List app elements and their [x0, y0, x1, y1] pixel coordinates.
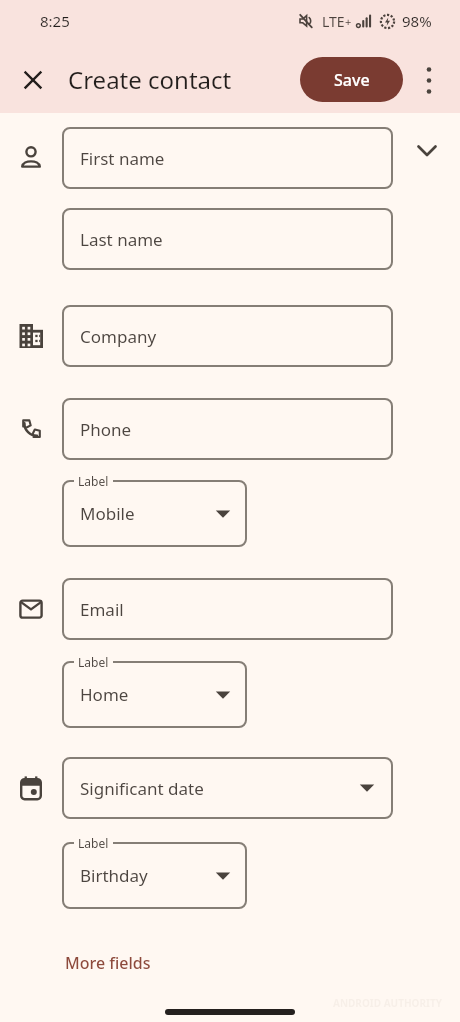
staticText: More fields [65, 952, 151, 974]
staticText: Birthday [80, 864, 148, 887]
button[interactable]: Email [62, 578, 393, 640]
button[interactable] [417, 68, 441, 92]
staticText: Mobile [80, 502, 135, 525]
staticText: Company [80, 325, 157, 348]
staticText: Email [80, 598, 124, 621]
staticText: Significant date [80, 777, 204, 800]
button[interactable]: First name [62, 127, 393, 189]
button[interactable]: Significant date [62, 757, 393, 819]
button[interactable]: More fields [65, 952, 151, 974]
button[interactable] [415, 142, 439, 160]
button[interactable]: Last name [62, 208, 393, 270]
staticText: Save [334, 69, 370, 91]
staticText: First name [80, 147, 165, 170]
staticText: Phone [80, 418, 132, 441]
button[interactable]: Save [300, 57, 403, 102]
button[interactable]: Birthday [62, 842, 247, 909]
staticText: Label [78, 473, 109, 489]
button[interactable]: Company [62, 305, 393, 367]
button[interactable]: Phone [62, 398, 393, 460]
button[interactable]: Home [62, 661, 247, 728]
staticText: 8:25 [40, 11, 70, 31]
staticText: Label [78, 654, 109, 670]
staticText: + [345, 14, 352, 29]
staticText: Home [80, 683, 129, 706]
staticText: Label [78, 835, 109, 851]
staticText: ANDROID AUTHORITY [333, 996, 442, 1010]
staticText: 98% [402, 11, 432, 31]
staticText: Create contact [68, 63, 232, 96]
staticText: LTE [322, 12, 345, 31]
button[interactable]: Mobile [62, 480, 247, 547]
staticText: Last name [80, 228, 163, 251]
button[interactable] [25, 72, 41, 88]
